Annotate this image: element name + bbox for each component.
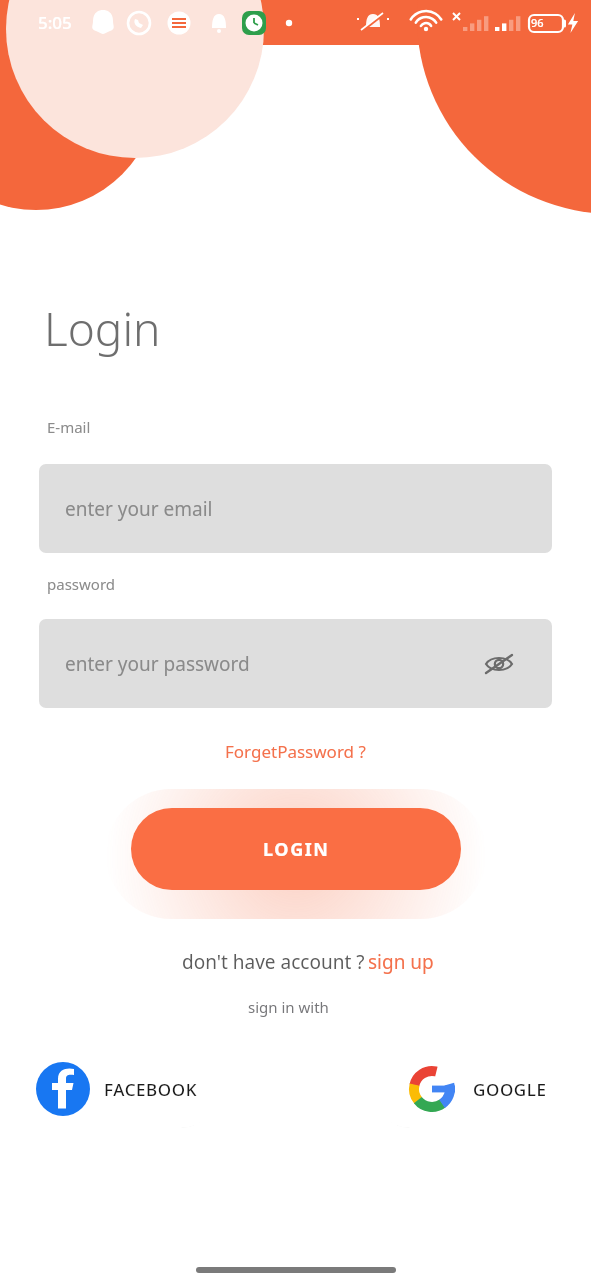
staticText: E-mail	[47, 417, 91, 437]
button[interactable]: Show password	[479, 644, 519, 684]
staticText: 5:05	[38, 11, 72, 34]
staticText: sign in with	[248, 997, 329, 1017]
button[interactable]: sign up	[365, 946, 437, 978]
staticText: LOGIN	[263, 837, 330, 862]
staticText: enter your password	[65, 651, 250, 677]
staticText: ForgetPassword ?	[225, 740, 366, 763]
button[interactable]: FACEBOOK	[0, 1050, 220, 1128]
button[interactable]: ForgetPassword ?	[219, 736, 372, 767]
button[interactable]: GOOGLE	[371, 1050, 591, 1128]
staticText: FACEBOOK	[104, 1078, 198, 1101]
staticText: Login	[44, 297, 161, 360]
staticText: GOOGLE	[473, 1078, 547, 1101]
button[interactable]: enter your email	[39, 464, 552, 553]
staticText: enter your email	[65, 496, 213, 522]
staticText: don't have account ?	[182, 949, 365, 975]
button[interactable]: LOGIN	[131, 808, 461, 890]
button[interactable]: enter your password	[39, 619, 552, 708]
staticText: 96	[531, 15, 544, 30]
staticText: sign up	[368, 949, 434, 975]
staticText: password	[47, 574, 115, 594]
